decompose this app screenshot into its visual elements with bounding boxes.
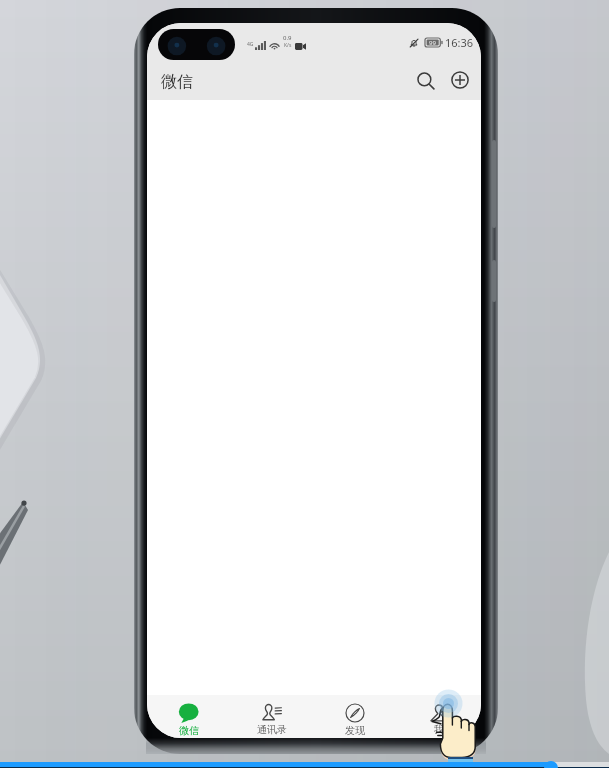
staticText: 发现 (345, 724, 365, 737)
button[interactable]: Search (411, 66, 441, 96)
button[interactable]: 我 (397, 695, 481, 738)
staticText: 微信 (161, 72, 193, 92)
staticText: 99 (429, 39, 436, 47)
button[interactable]: Add (445, 65, 475, 95)
staticText: 微信 (179, 724, 199, 737)
button[interactable]: 发现 (313, 695, 397, 738)
button[interactable]: 通讯录 (230, 695, 313, 738)
button[interactable]: 微信 (147, 695, 230, 738)
staticText: 4G (247, 41, 254, 48)
staticText: K/s (284, 42, 292, 49)
staticText: 0.9 (283, 34, 292, 42)
staticText: 16:36 (445, 35, 474, 50)
staticText: 通讯录 (257, 723, 287, 736)
staticText: 我 (434, 723, 444, 736)
